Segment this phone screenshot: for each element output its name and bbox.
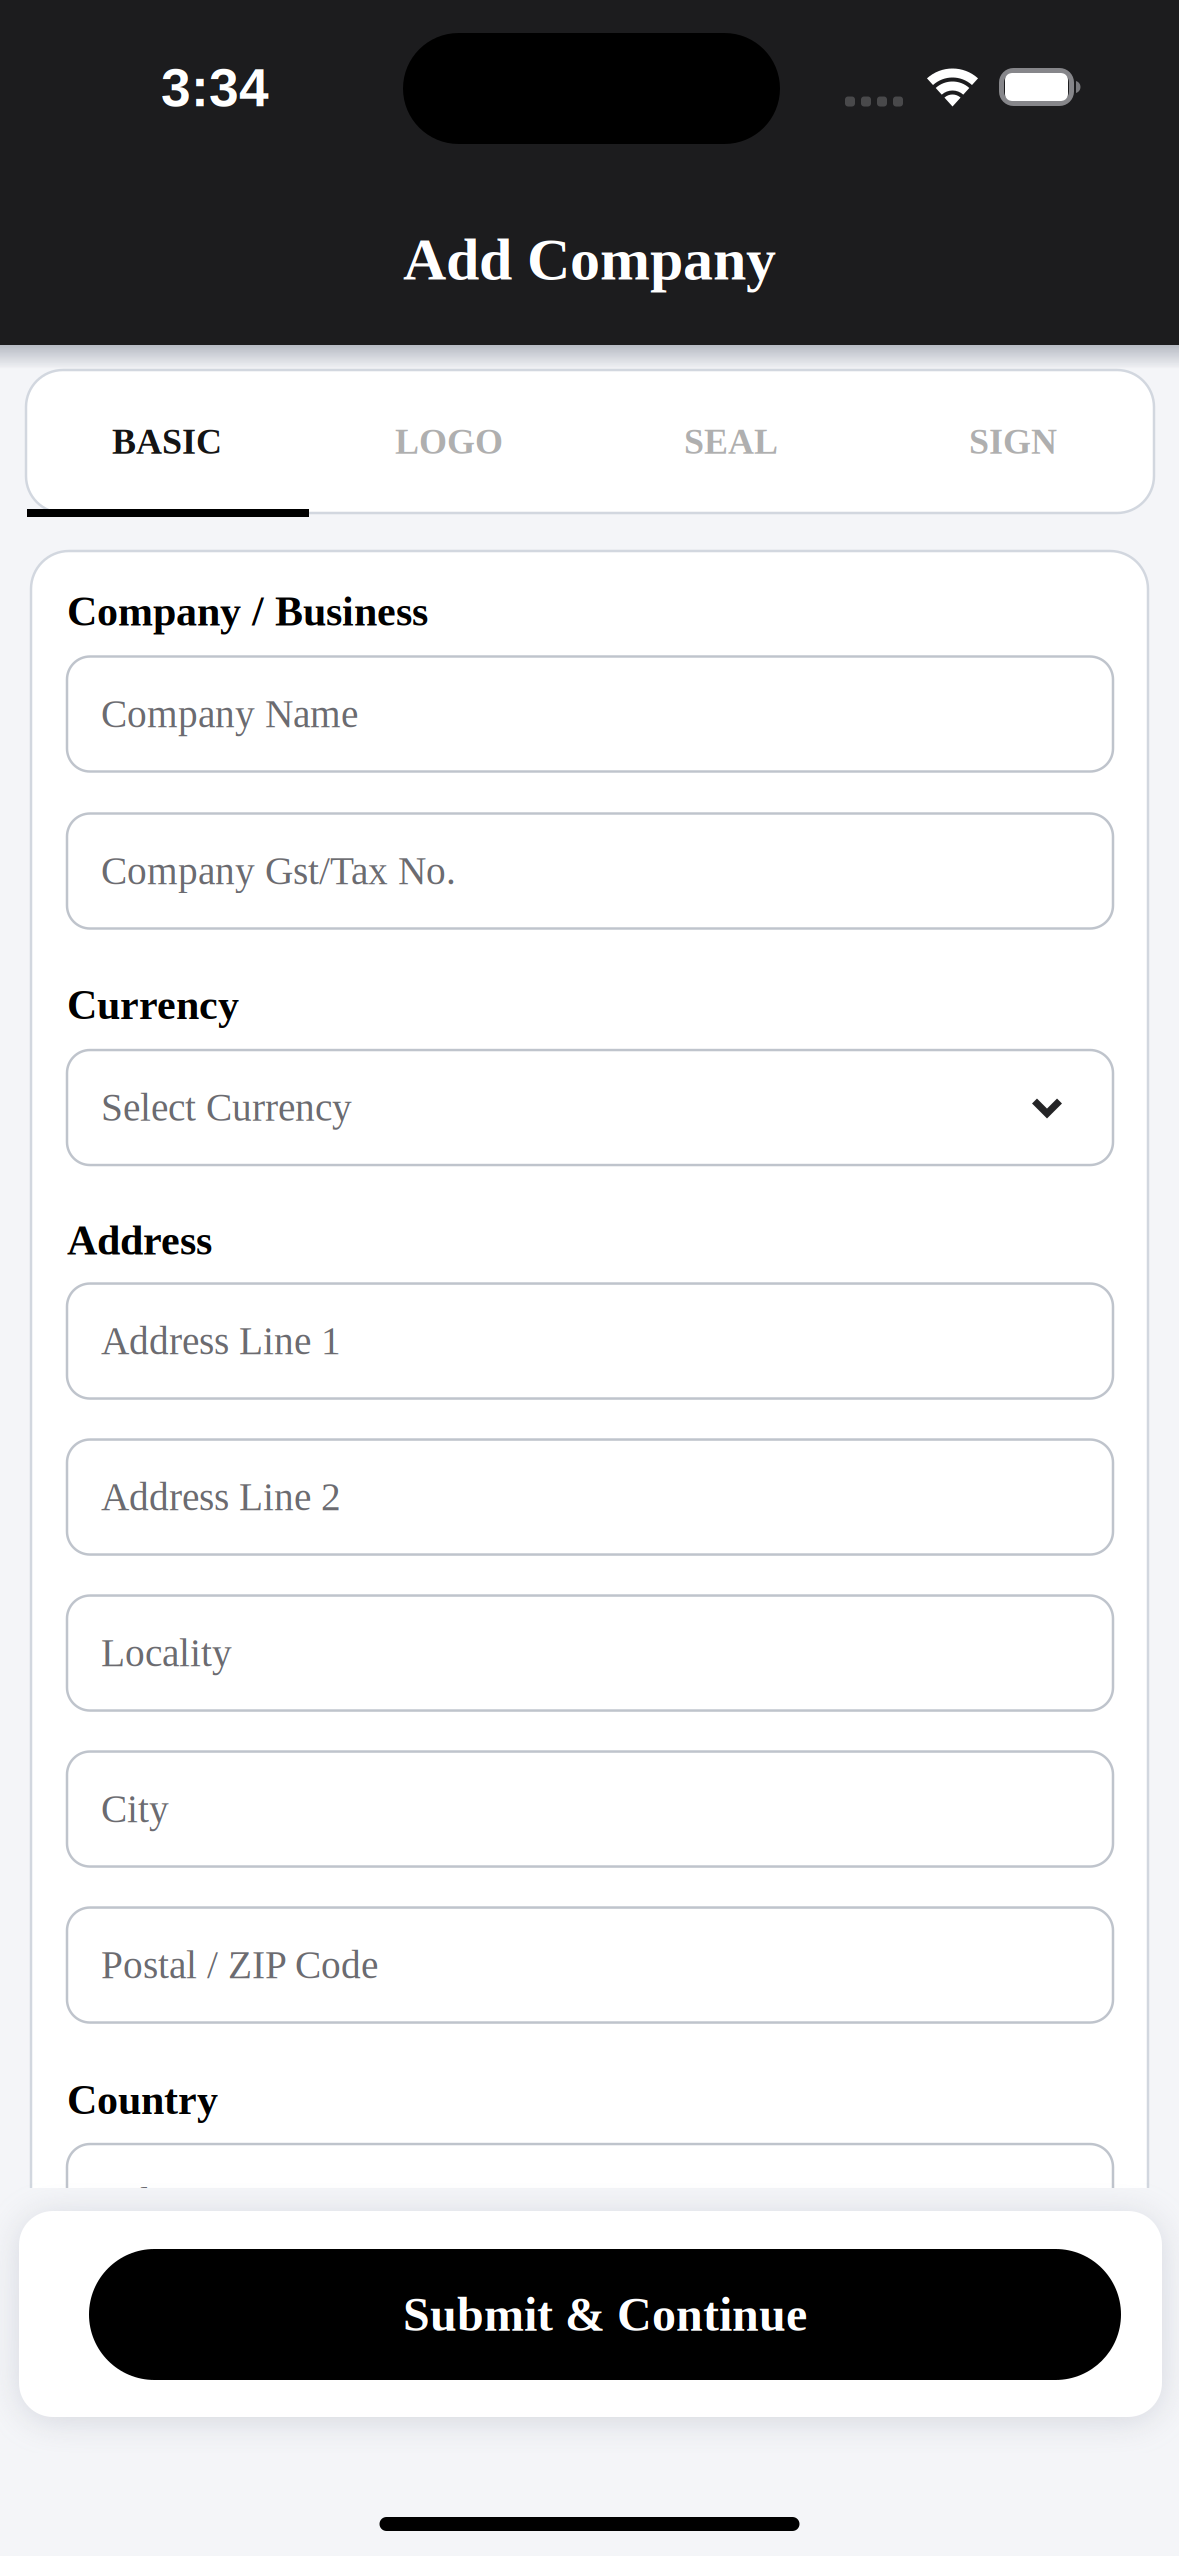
- staticText: 3:34: [161, 58, 269, 118]
- button[interactable]: Select Currency: [67, 1050, 1113, 1165]
- staticText: City: [101, 1787, 169, 1831]
- staticText: Locality: [101, 1631, 232, 1675]
- staticText: Add Company: [403, 226, 776, 292]
- staticText: Currency: [67, 981, 239, 1028]
- button[interactable]: Locality: [67, 1595, 1113, 1710]
- button[interactable]: Company Name: [67, 656, 1113, 771]
- staticText: Company / Business: [67, 588, 428, 634]
- staticText: LOGO: [395, 422, 503, 461]
- button[interactable]: City: [67, 1751, 1113, 1866]
- staticText: Select Currency: [101, 1086, 352, 1129]
- button[interactable]: BASIC: [26, 370, 308, 513]
- button[interactable]: Address Line 2: [67, 1439, 1113, 1554]
- staticText: Select Country: [101, 2180, 336, 2223]
- staticText: Address Line 1: [101, 1319, 341, 1363]
- staticText: Country: [67, 2076, 218, 2123]
- button[interactable]: LOGO: [308, 370, 590, 513]
- button[interactable]: Postal / ZIP Code: [67, 1907, 1113, 2022]
- button[interactable]: Submit & Continue: [89, 2249, 1121, 2380]
- button[interactable]: SIGN: [872, 370, 1154, 513]
- staticText: Postal / ZIP Code: [101, 1943, 378, 1987]
- staticText: BASIC: [112, 422, 222, 461]
- button[interactable]: Address Line 1: [67, 1283, 1113, 1398]
- staticText: Submit & Continue: [403, 2288, 807, 2341]
- staticText: SIGN: [969, 422, 1057, 461]
- button[interactable]: Select Country: [67, 2144, 1113, 2259]
- staticText: SEAL: [684, 422, 778, 461]
- button[interactable]: SEAL: [590, 370, 872, 513]
- staticText: Company Name: [101, 692, 358, 736]
- staticText: Address Line 2: [101, 1475, 341, 1519]
- button[interactable]: Company Gst/Tax No.: [67, 813, 1113, 928]
- staticText: Address: [67, 1217, 212, 1263]
- staticText: Company Gst/Tax No.: [101, 849, 456, 893]
